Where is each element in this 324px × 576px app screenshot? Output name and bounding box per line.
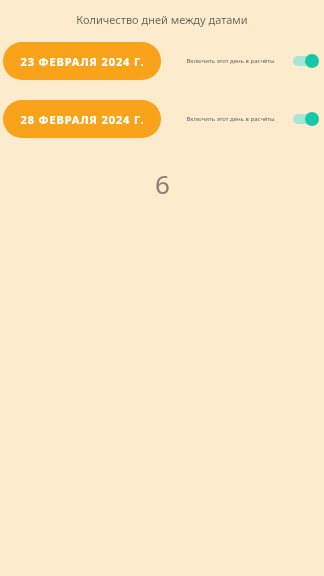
staticText: Включить этот день в расчёты (186, 57, 275, 65)
button[interactable]: 28 ФЕВРАЛЯ 2024 Г. (3, 100, 161, 138)
button[interactable]: 23 ФЕВРАЛЯ 2024 Г. (3, 42, 161, 80)
button[interactable]: Включить этот день в расчёты (292, 109, 320, 129)
staticText: Количество дней между датами (76, 12, 248, 27)
staticText: 28 ФЕВРАЛЯ 2024 Г. (20, 112, 145, 127)
button[interactable]: Включить этот день в расчёты (292, 51, 320, 71)
staticText: 23 ФЕВРАЛЯ 2024 Г. (20, 54, 145, 69)
staticText: 6 (155, 166, 170, 201)
staticText: Включить этот день в расчёты (186, 115, 275, 123)
